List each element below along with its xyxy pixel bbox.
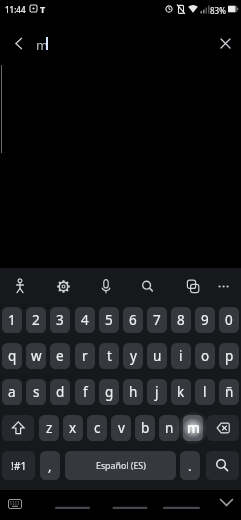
- staticText: 0: [225, 311, 233, 329]
- staticText: d: [56, 383, 65, 401]
- staticText: !#1: [11, 459, 27, 473]
- staticText: ñ: [225, 383, 234, 401]
- staticText: r: [82, 347, 88, 365]
- staticText: e: [56, 347, 64, 365]
- button[interactable]: Español (ES): [65, 451, 176, 480]
- staticText: l: [203, 383, 207, 401]
- button[interactable]: [207, 415, 239, 441]
- staticText: j: [155, 383, 159, 401]
- staticText: n: [165, 419, 174, 437]
- button[interactable]: [178, 273, 204, 300]
- staticText: m: [187, 419, 200, 437]
- button[interactable]: g: [99, 379, 119, 405]
- button[interactable]: ñ: [219, 379, 239, 405]
- button[interactable]: [6, 32, 30, 56]
- staticText: q: [8, 347, 17, 365]
- button[interactable]: f: [75, 379, 95, 405]
- button[interactable]: [2, 415, 34, 441]
- staticText: w: [31, 347, 42, 365]
- button[interactable]: m: [183, 415, 203, 441]
- staticText: y: [130, 347, 137, 365]
- button[interactable]: r: [75, 343, 95, 369]
- button[interactable]: [4, 494, 26, 514]
- button[interactable]: [215, 493, 238, 513]
- button[interactable]: z: [39, 415, 59, 441]
- button[interactable]: [51, 273, 77, 300]
- button[interactable]: h: [123, 379, 143, 405]
- staticText: i: [179, 347, 183, 365]
- button[interactable]: 2: [26, 307, 46, 333]
- staticText: 7: [153, 311, 161, 329]
- button[interactable]: 5: [99, 307, 119, 333]
- staticText: 8: [177, 311, 185, 329]
- button[interactable]: b: [135, 415, 155, 441]
- button[interactable]: [215, 32, 239, 56]
- button[interactable]: 8: [171, 307, 191, 333]
- staticText: s: [33, 383, 40, 401]
- button[interactable]: 7: [147, 307, 167, 333]
- button[interactable]: j: [147, 379, 167, 405]
- button[interactable]: x: [63, 415, 83, 441]
- button[interactable]: w: [26, 343, 46, 369]
- staticText: a: [8, 383, 16, 401]
- button[interactable]: [135, 273, 161, 300]
- staticText: g: [105, 383, 114, 401]
- button[interactable]: l: [195, 379, 215, 405]
- button[interactable]: 4: [75, 307, 95, 333]
- staticText: v: [118, 419, 125, 437]
- button[interactable]: i: [171, 343, 191, 369]
- button[interactable]: u: [147, 343, 167, 369]
- staticText: o: [201, 347, 210, 365]
- button[interactable]: t: [99, 343, 119, 369]
- button[interactable]: p: [219, 343, 239, 369]
- button[interactable]: s: [26, 379, 46, 405]
- staticText: m: [36, 36, 49, 54]
- button[interactable]: d: [50, 379, 70, 405]
- staticText: t: [107, 347, 112, 365]
- staticText: u: [153, 347, 162, 365]
- staticText: 5: [105, 311, 113, 329]
- button[interactable]: [93, 273, 119, 300]
- staticText: 2: [32, 311, 40, 329]
- button[interactable]: ,: [40, 451, 60, 480]
- button[interactable]: [206, 451, 239, 480]
- staticText: 11:44: [5, 4, 26, 15]
- staticText: f: [83, 383, 88, 401]
- staticText: c: [94, 419, 101, 437]
- button[interactable]: [211, 273, 237, 300]
- staticText: p: [225, 347, 234, 365]
- button[interactable]: 6: [123, 307, 143, 333]
- button[interactable]: y: [123, 343, 143, 369]
- button[interactable]: 3: [50, 307, 70, 333]
- staticText: T: [40, 3, 46, 15]
- button[interactable]: 0: [219, 307, 239, 333]
- button[interactable]: o: [195, 343, 215, 369]
- button[interactable]: [7, 273, 33, 300]
- button[interactable]: e: [50, 343, 70, 369]
- staticText: z: [46, 419, 53, 437]
- button[interactable]: 1: [2, 307, 22, 333]
- staticText: b: [141, 419, 150, 437]
- button[interactable]: n: [159, 415, 179, 441]
- staticText: ,: [48, 457, 52, 475]
- button[interactable]: .: [180, 451, 200, 480]
- staticText: 6: [129, 311, 137, 329]
- staticText: k: [177, 383, 185, 401]
- button[interactable]: c: [87, 415, 107, 441]
- button[interactable]: a: [2, 379, 22, 405]
- button[interactable]: v: [111, 415, 131, 441]
- staticText: 4: [81, 311, 89, 329]
- button[interactable]: !#1: [2, 451, 35, 480]
- button[interactable]: q: [2, 343, 22, 369]
- button[interactable]: 9: [195, 307, 215, 333]
- staticText: 9: [201, 311, 209, 329]
- staticText: 83%: [210, 5, 226, 16]
- staticText: 3: [56, 311, 64, 329]
- staticText: x: [69, 419, 77, 437]
- staticText: Español (ES): [96, 460, 146, 472]
- staticText: 1: [8, 311, 16, 329]
- button[interactable]: k: [171, 379, 191, 405]
- staticText: h: [129, 383, 138, 401]
- staticText: .: [188, 457, 192, 475]
